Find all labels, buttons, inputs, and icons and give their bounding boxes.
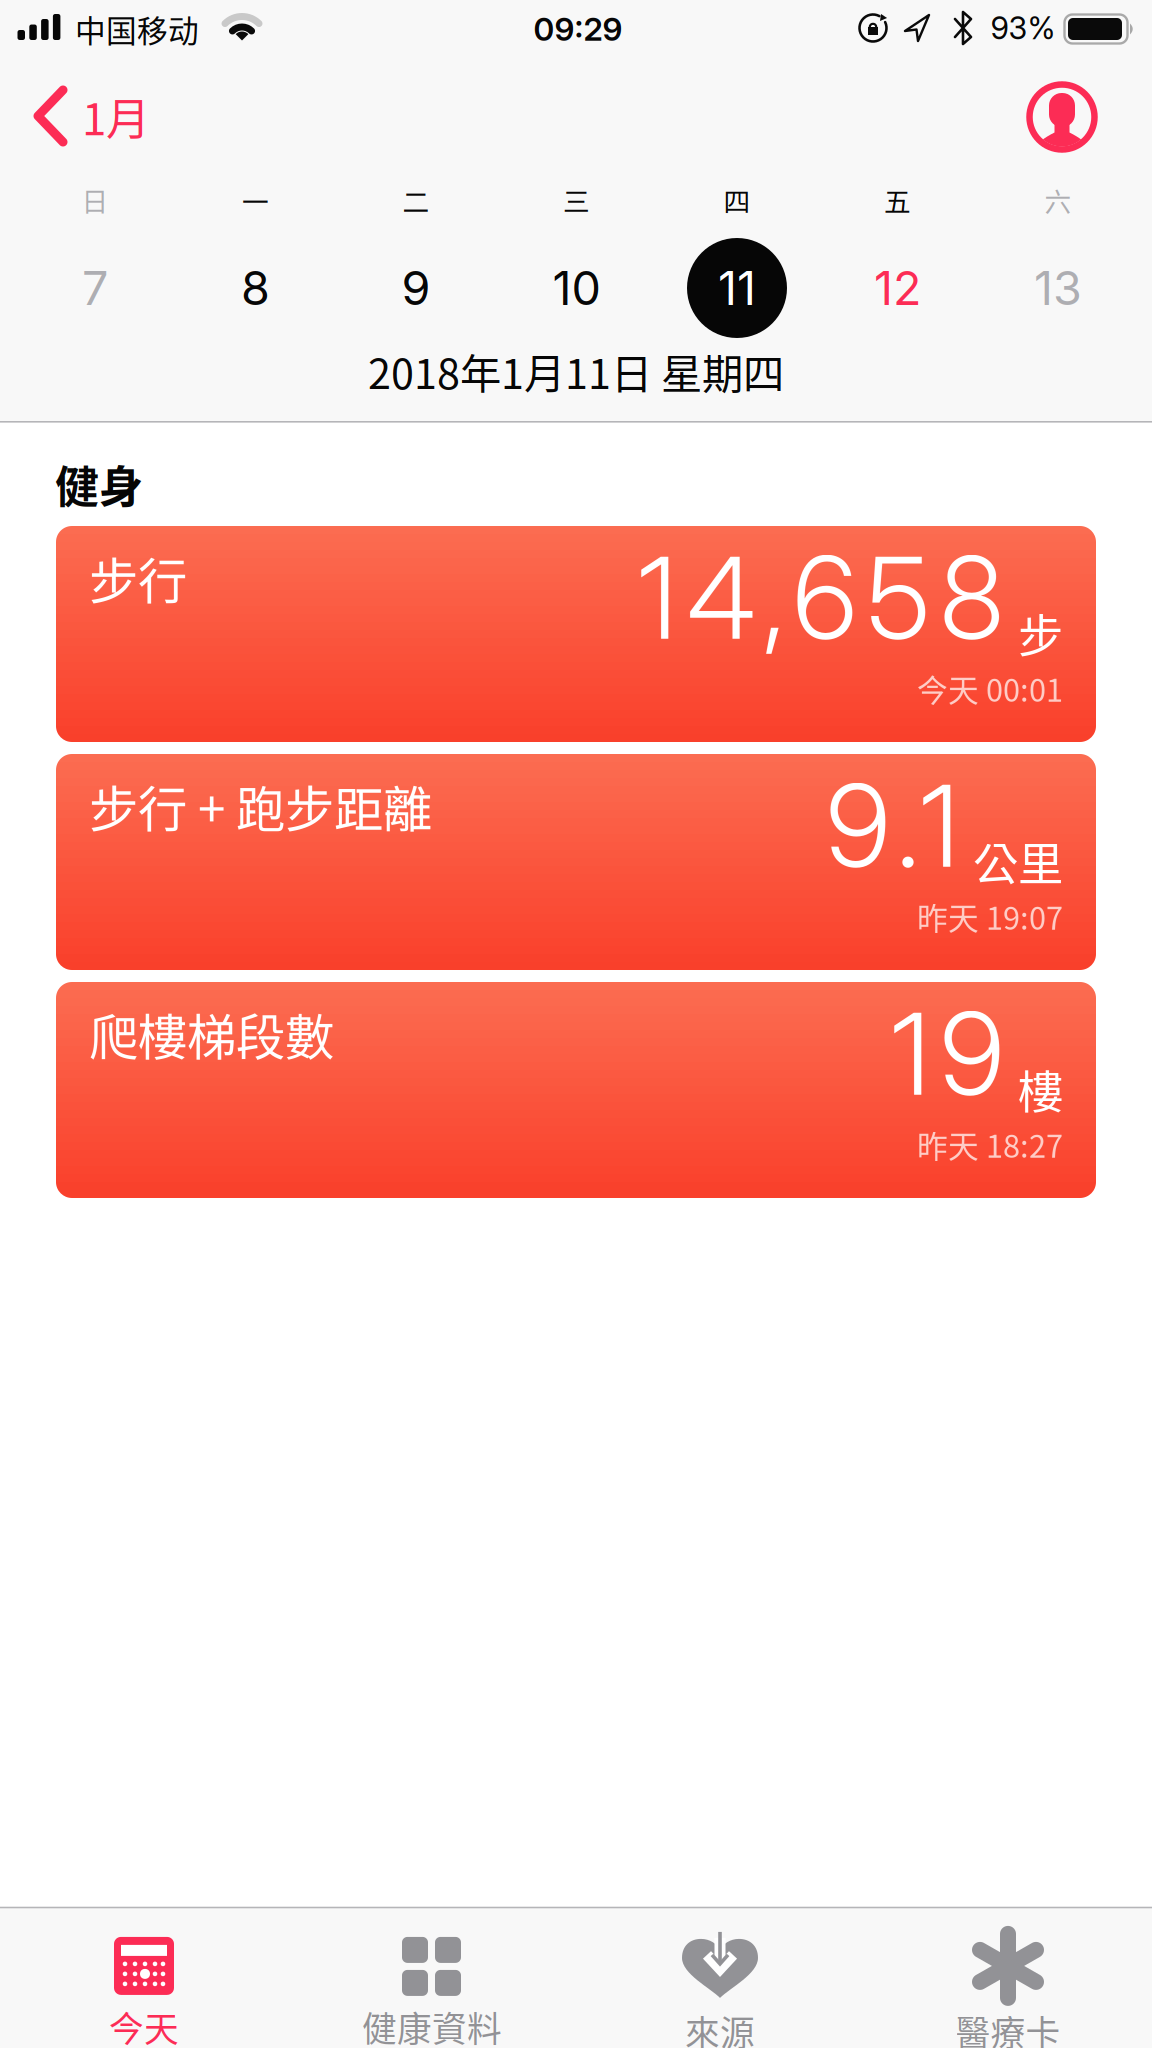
staticText: 14,658: [638, 529, 1004, 666]
staticText: 六: [1044, 181, 1071, 219]
button[interactable]: 醫療卡: [868, 1932, 1148, 2048]
staticText: 健身: [55, 452, 143, 516]
staticText: 中国移动: [75, 7, 199, 51]
staticText: 1月: [82, 84, 150, 148]
button[interactable]: 11: [685, 236, 789, 340]
button[interactable]: 9: [364, 236, 468, 340]
staticText: 93%: [990, 9, 1055, 46]
staticText: 五: [884, 181, 911, 219]
staticText: 昨天 18:27: [917, 1122, 1063, 1166]
button[interactable]: 來源: [580, 1932, 860, 2048]
staticText: 19: [891, 985, 1004, 1122]
staticText: 醫療卡: [955, 2006, 1060, 2048]
staticText: 9: [401, 260, 430, 316]
staticText: 昨天 19:07: [917, 894, 1063, 938]
button[interactable]: 步行: [56, 526, 1096, 742]
button[interactable]: 10: [524, 236, 628, 340]
staticText: 9.1: [826, 757, 959, 894]
staticText: 爬樓梯段數: [89, 998, 334, 1069]
staticText: 健康資料: [362, 2002, 502, 2048]
staticText: 二: [402, 181, 429, 219]
button[interactable]: 健康資料: [292, 1932, 572, 2048]
staticText: 2018年1月11日 星期四: [368, 341, 784, 401]
button[interactable]: 7: [43, 236, 147, 340]
staticText: 11: [718, 260, 756, 316]
button[interactable]: 個人檔案: [1026, 81, 1098, 153]
staticText: 09:29: [533, 10, 622, 48]
staticText: 步: [1018, 600, 1063, 666]
button[interactable]: 爬樓梯段數: [56, 982, 1096, 1198]
button[interactable]: 8: [203, 236, 307, 340]
staticText: 12: [874, 260, 921, 316]
button[interactable]: 13: [1006, 236, 1110, 340]
staticText: 三: [563, 181, 590, 219]
staticText: 步行: [89, 542, 187, 613]
staticText: 公里: [973, 828, 1063, 894]
staticText: 步行 + 跑步距離: [89, 770, 432, 841]
button[interactable]: 步行 + 跑步距離: [56, 754, 1096, 970]
staticText: 13: [1034, 260, 1082, 316]
staticText: 日: [81, 181, 108, 219]
staticText: 7: [82, 260, 108, 316]
staticText: 四: [723, 181, 750, 219]
button[interactable]: 1月: [34, 84, 150, 148]
staticText: 來源: [685, 2006, 755, 2048]
button[interactable]: 12: [845, 236, 949, 340]
staticText: 一: [242, 181, 269, 219]
staticText: 樓: [1018, 1056, 1063, 1122]
staticText: 10: [552, 260, 600, 316]
staticText: 今天 00:01: [917, 666, 1063, 710]
button[interactable]: 今天: [4, 1932, 284, 2048]
staticText: 今天: [109, 2002, 179, 2048]
staticText: 8: [241, 260, 270, 316]
